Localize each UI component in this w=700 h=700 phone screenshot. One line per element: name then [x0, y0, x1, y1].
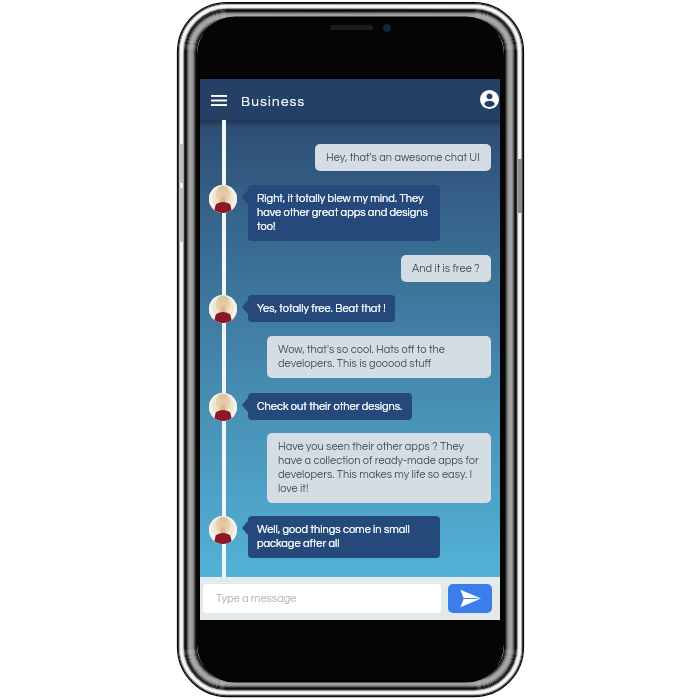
- button[interactable]: Wow, that's so cool. Hats off to the dev…: [267, 336, 491, 378]
- button[interactable]: Right, it totally blew my mind. They hav…: [248, 185, 440, 241]
- staticText: Well, good things come in small package …: [257, 524, 431, 550]
- button[interactable]: Hey, that's an awesome chat UI: [315, 144, 491, 171]
- button[interactable]: Menu: [208, 88, 229, 112]
- staticText: Business: [241, 95, 306, 109]
- staticText: Yes, totally free. Beat that !: [257, 303, 386, 314]
- button[interactable]: Account: [478, 85, 500, 114]
- button[interactable]: Check out their other designs.: [248, 393, 412, 420]
- button[interactable]: And it is free ?: [401, 255, 491, 282]
- button[interactable]: Type a message: [203, 584, 441, 613]
- button[interactable]: Have you seen their other apps ? They ha…: [267, 433, 491, 503]
- button[interactable]: Send: [448, 584, 492, 613]
- staticText: Type a message: [216, 593, 297, 604]
- staticText: Have you seen their other apps ? They ha…: [278, 441, 480, 495]
- staticText: Hey, that's an awesome chat UI: [326, 152, 480, 163]
- staticText: Right, it totally blew my mind. They hav…: [257, 193, 431, 233]
- button[interactable]: Well, good things come in small package …: [248, 516, 440, 558]
- staticText: Wow, that's so cool. Hats off to the dev…: [278, 344, 480, 370]
- staticText: And it is free ?: [412, 263, 480, 274]
- staticText: Check out their other designs.: [257, 401, 403, 412]
- button[interactable]: Yes, totally free. Beat that !: [248, 295, 395, 322]
